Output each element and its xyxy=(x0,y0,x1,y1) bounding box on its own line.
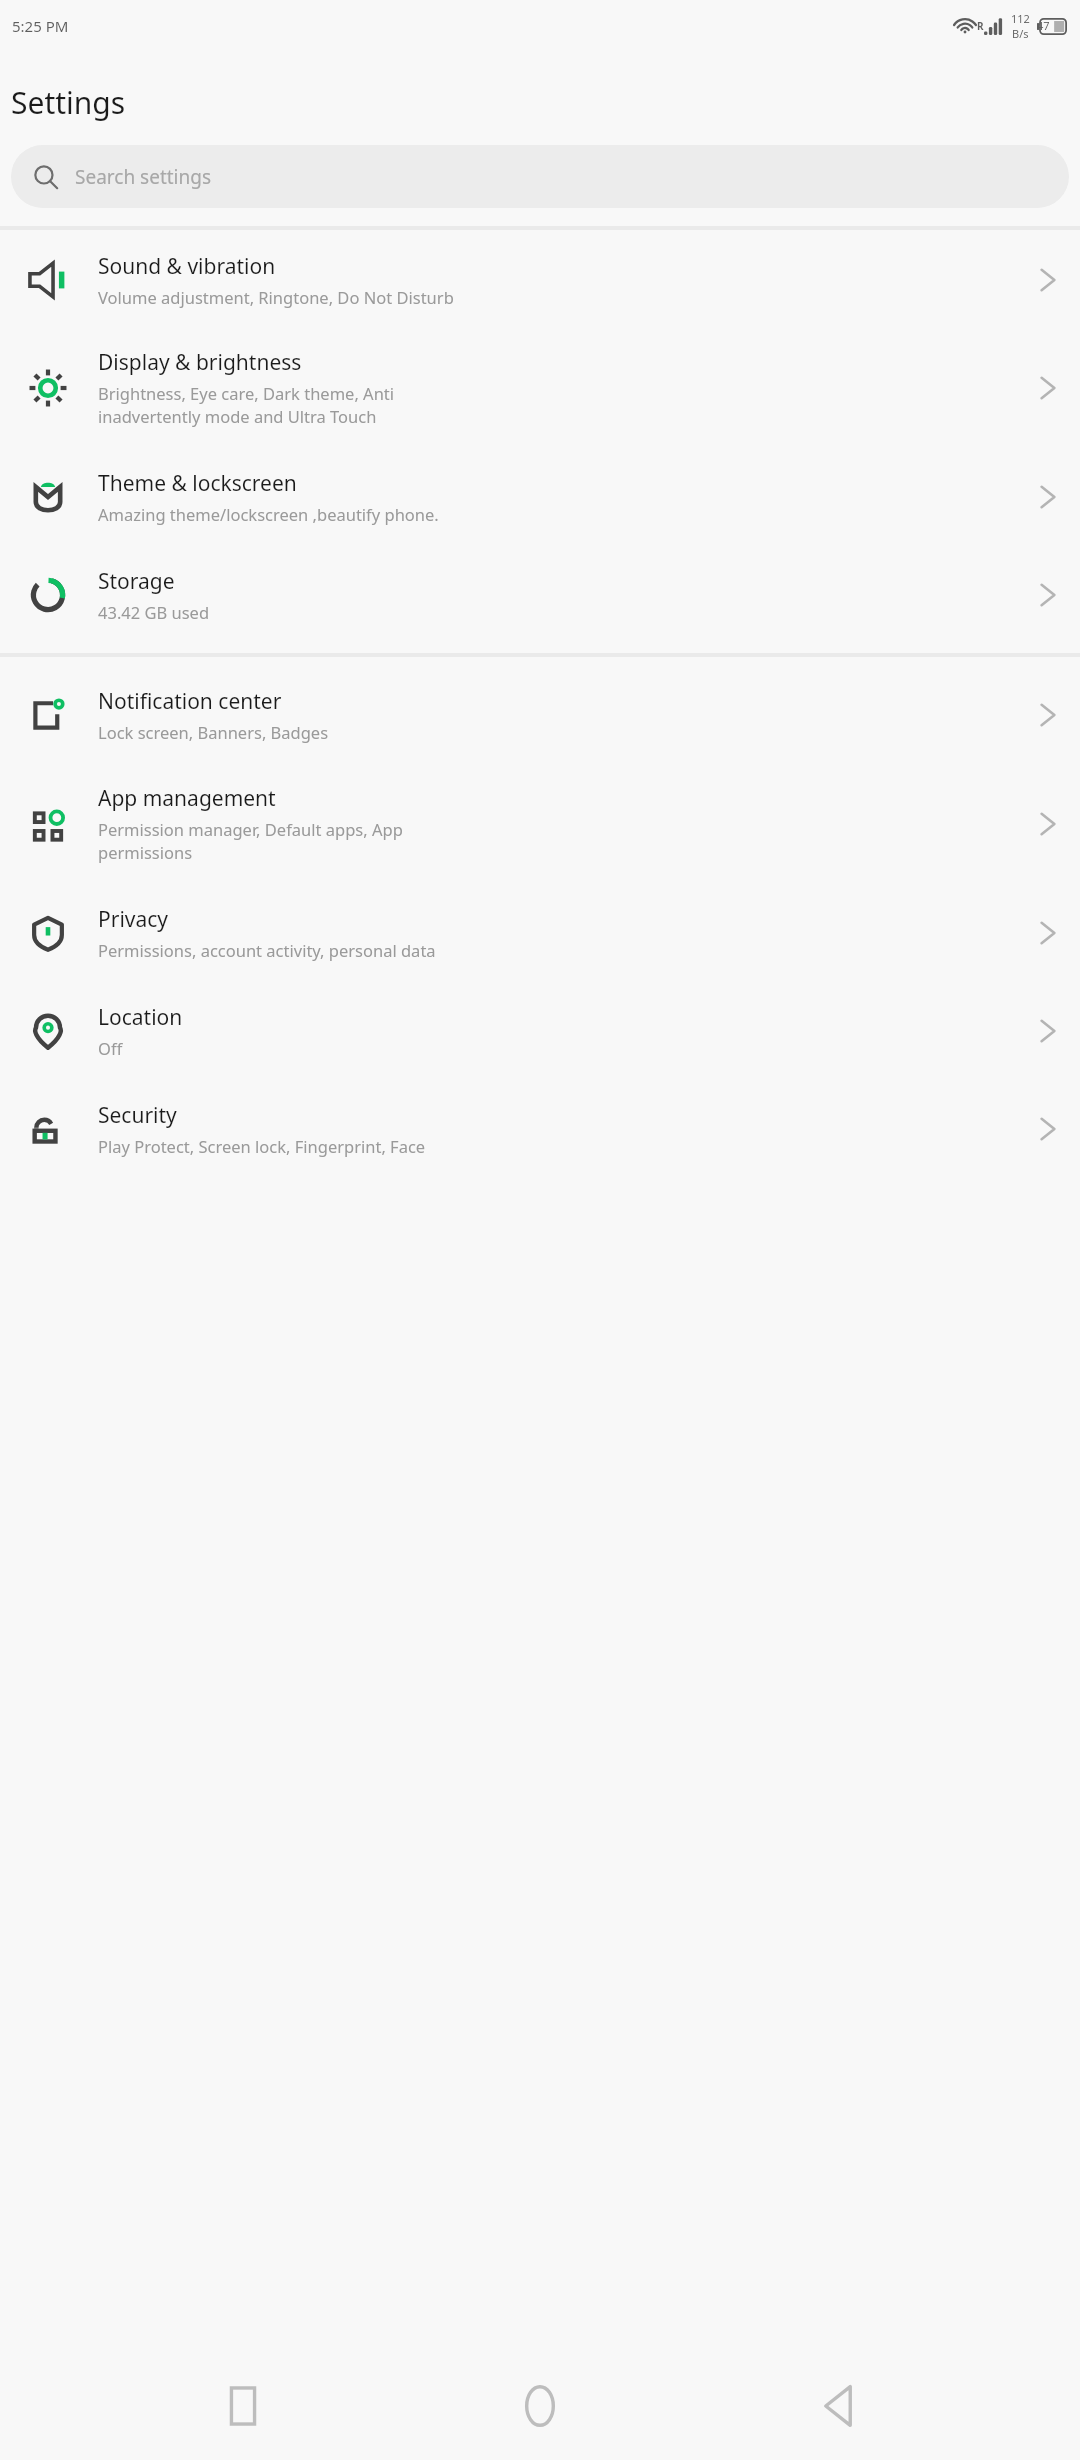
button[interactable]: Theme & lockscreen xyxy=(0,447,1080,547)
staticText: Lock screen, Banners, Badges xyxy=(98,721,329,743)
staticText: 5:25 PM xyxy=(12,16,69,36)
staticText: Search settings xyxy=(75,164,212,190)
staticText: App management xyxy=(98,784,276,813)
staticText: Amazing theme/lockscreen ,beautify phone… xyxy=(98,503,439,525)
staticText: Permission manager, Default apps, App pe… xyxy=(98,818,403,864)
staticText: B/s xyxy=(1012,26,1029,41)
staticText: Storage xyxy=(98,567,175,596)
staticText: Sound & vibration xyxy=(98,252,276,281)
button[interactable]: Storage xyxy=(0,547,1080,643)
staticText: 112 xyxy=(1011,11,1030,26)
staticText: Display & brightness xyxy=(98,348,302,377)
button[interactable]: Privacy xyxy=(0,883,1080,983)
button[interactable]: Display & brightness xyxy=(0,329,1080,447)
button[interactable]: Home xyxy=(485,2352,595,2460)
staticText: Volume adjustment, Ringtone, Do Not Dist… xyxy=(98,286,454,308)
staticText: 43.42 GB used xyxy=(98,601,210,623)
button[interactable]: Back xyxy=(783,2352,893,2460)
staticText: Privacy xyxy=(98,905,169,934)
staticText: Security xyxy=(98,1101,177,1130)
staticText: Theme & lockscreen xyxy=(98,469,297,498)
staticText: 47 xyxy=(1037,18,1050,33)
staticText: Permissions, account activity, personal … xyxy=(98,939,436,961)
button[interactable]: Location xyxy=(0,983,1080,1079)
staticText: Brightness, Eye care, Dark theme, Anti i… xyxy=(98,382,395,428)
staticText: R xyxy=(977,19,984,33)
button[interactable]: Search settings xyxy=(11,145,1069,208)
button[interactable]: Recent apps xyxy=(188,2352,298,2460)
button[interactable]: Notification center xyxy=(0,665,1080,765)
button[interactable]: App management xyxy=(0,765,1080,883)
staticText: Settings xyxy=(11,82,126,123)
staticText: Notification center xyxy=(98,687,282,716)
button[interactable]: Security xyxy=(0,1079,1080,1179)
staticText: Play Protect, Screen lock, Fingerprint, … xyxy=(98,1135,426,1157)
staticText: Location xyxy=(98,1003,183,1032)
staticText: Off xyxy=(98,1037,123,1059)
button[interactable]: Sound & vibration xyxy=(0,230,1080,329)
